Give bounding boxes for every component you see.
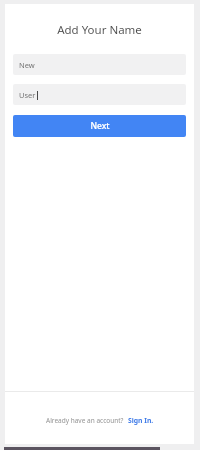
- staticText: Sign In.: [128, 416, 154, 425]
- staticText: New: [19, 60, 35, 70]
- button[interactable]: Next: [13, 115, 186, 137]
- button[interactable]: New: [13, 54, 186, 75]
- staticText: Already have an account?: [46, 416, 124, 425]
- staticText: User: [19, 90, 36, 100]
- button[interactable]: Sign In.: [128, 416, 154, 425]
- staticText: Add Your Name: [57, 22, 142, 38]
- button[interactable]: User: [13, 84, 186, 105]
- staticText: Next: [90, 120, 110, 132]
